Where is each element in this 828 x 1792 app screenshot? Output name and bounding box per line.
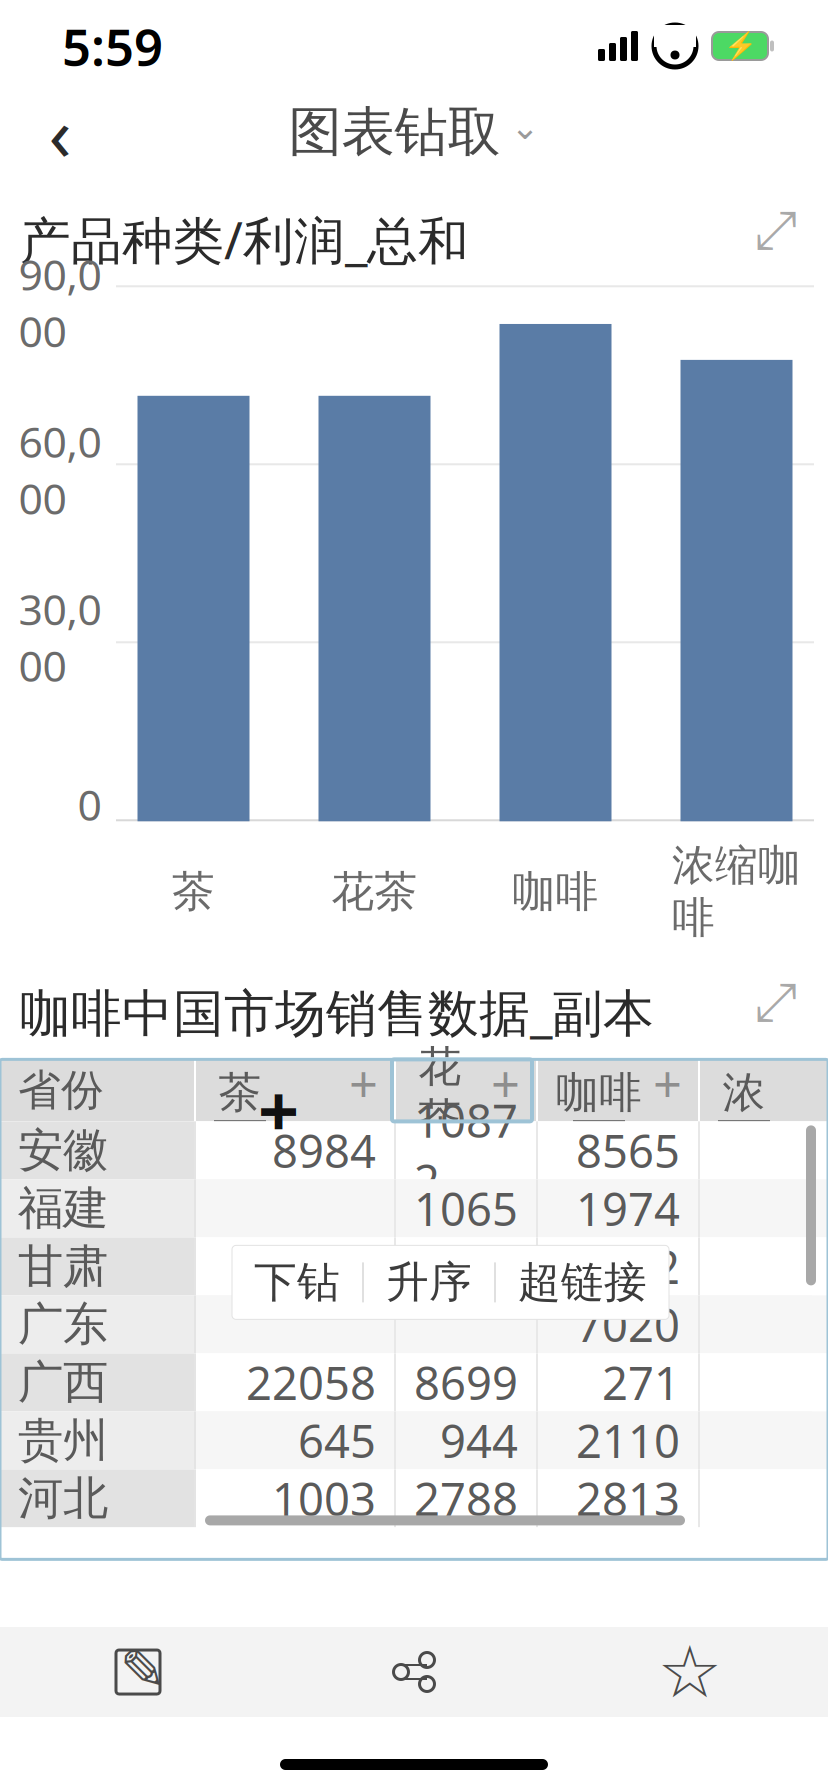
button[interactable]: [196, 1295, 394, 1353]
button[interactable]: [396, 1237, 536, 1295]
staticText: 咖啡: [556, 1067, 642, 1119]
staticText: 8984: [272, 1120, 376, 1180]
staticText: 咖啡: [512, 865, 598, 918]
staticText: 河北: [18, 1470, 108, 1526]
staticText: ⚡: [723, 31, 756, 61]
button[interactable]: 271: [538, 1353, 698, 1411]
staticText: 8565: [576, 1120, 680, 1180]
staticText: +: [491, 1050, 520, 1117]
button[interactable]: 河北: [0, 1469, 194, 1527]
button[interactable]: 8565: [538, 1121, 698, 1179]
staticText: 10872: [414, 1090, 518, 1211]
button[interactable]: 8984: [196, 1121, 394, 1179]
staticText: 645: [298, 1410, 376, 1470]
staticText: ⌄: [510, 107, 539, 147]
staticText: ☆: [657, 1631, 722, 1713]
staticText: 1003: [272, 1468, 376, 1528]
button[interactable]: 7020: [538, 1295, 698, 1353]
staticText: 30,000: [18, 580, 101, 694]
staticText: 茶: [218, 1067, 261, 1119]
staticText: 福建: [18, 1180, 108, 1236]
button[interactable]: [700, 1237, 812, 1295]
button[interactable]: 升序: [364, 1245, 494, 1319]
staticText: 省份: [18, 1064, 104, 1117]
staticText: 广东: [18, 1296, 108, 1352]
staticText: 产品种类/利润_总和: [20, 206, 469, 273]
staticText: 升序: [386, 1256, 472, 1309]
staticText: 花茶: [418, 1040, 461, 1145]
staticText: +: [258, 1061, 299, 1157]
button[interactable]: 1065: [396, 1179, 536, 1237]
button[interactable]: 1003: [196, 1469, 394, 1527]
staticText: 广西: [18, 1354, 108, 1410]
button[interactable]: 10872: [396, 1121, 536, 1179]
staticText: +: [349, 1050, 378, 1117]
staticText: 2813: [576, 1468, 680, 1528]
button[interactable]: 省份: [0, 1059, 194, 1121]
button[interactable]: 1974: [538, 1179, 698, 1237]
button[interactable]: 咖啡: [538, 1059, 698, 1121]
button[interactable]: 超链接: [496, 1245, 669, 1319]
button[interactable]: 花茶: [396, 1059, 536, 1121]
staticText: ✎: [119, 1638, 166, 1702]
staticText: 2788: [414, 1468, 518, 1528]
button[interactable]: [700, 1179, 812, 1237]
button[interactable]: 645: [196, 1411, 394, 1469]
button[interactable]: 安徽: [0, 1121, 194, 1179]
button[interactable]: [196, 1237, 394, 1295]
button[interactable]: 944: [396, 1411, 536, 1469]
staticText: 浓缩咖啡: [672, 839, 801, 944]
button[interactable]: 全屏显示表格: [746, 978, 806, 1030]
staticText: 5:59: [62, 12, 163, 80]
button[interactable]: 2788: [396, 1469, 536, 1527]
staticText: 茶: [172, 865, 215, 918]
button[interactable]: 返回: [12, 92, 108, 172]
button[interactable]: [396, 1295, 536, 1353]
staticText: 90,000: [18, 246, 101, 359]
staticText: 浓: [722, 1067, 765, 1119]
button[interactable]: 分享: [276, 1627, 552, 1717]
button[interactable]: 8699: [396, 1353, 536, 1411]
staticText: 甘肃: [18, 1238, 108, 1294]
button[interactable]: 茶: [196, 1059, 394, 1121]
staticText: 2110: [576, 1410, 680, 1470]
staticText: 超链接: [518, 1256, 647, 1309]
button[interactable]: 2813: [538, 1469, 698, 1527]
button[interactable]: 甘肃: [0, 1237, 194, 1295]
staticText: 1372: [576, 1236, 680, 1296]
staticText: ⤢: [754, 206, 797, 258]
button[interactable]: 22058: [196, 1353, 394, 1411]
staticText: 1065: [414, 1178, 518, 1238]
button[interactable]: 浓: [700, 1059, 812, 1121]
button[interactable]: 广西: [0, 1353, 194, 1411]
button[interactable]: 贵州: [0, 1411, 194, 1469]
staticText: 0: [77, 776, 101, 833]
staticText: 贵州: [18, 1412, 108, 1468]
staticText: 1974: [576, 1178, 680, 1238]
button[interactable]: 1372: [538, 1237, 698, 1295]
staticText: ⤢: [754, 978, 797, 1030]
staticText: 图表钻取: [288, 99, 500, 165]
staticText: 咖啡中国市场销售数据_副本: [20, 978, 654, 1045]
staticText: 22058: [246, 1352, 376, 1412]
staticText: ‹: [48, 82, 71, 182]
button[interactable]: 全屏显示图表: [746, 206, 806, 258]
staticText: 7020: [576, 1294, 680, 1354]
staticText: 下钻: [254, 1256, 340, 1309]
button[interactable]: 2110: [538, 1411, 698, 1469]
button[interactable]: [700, 1121, 812, 1179]
button[interactable]: 下钻: [232, 1245, 362, 1319]
staticText: 271: [602, 1352, 680, 1412]
button[interactable]: 福建: [0, 1179, 194, 1237]
button[interactable]: 收藏: [552, 1627, 828, 1717]
staticText: 花茶: [331, 865, 417, 918]
button[interactable]: 广东: [0, 1295, 194, 1353]
staticText: 8699: [414, 1352, 518, 1412]
staticText: 安徽: [18, 1122, 108, 1178]
button[interactable]: 批注: [0, 1627, 276, 1717]
